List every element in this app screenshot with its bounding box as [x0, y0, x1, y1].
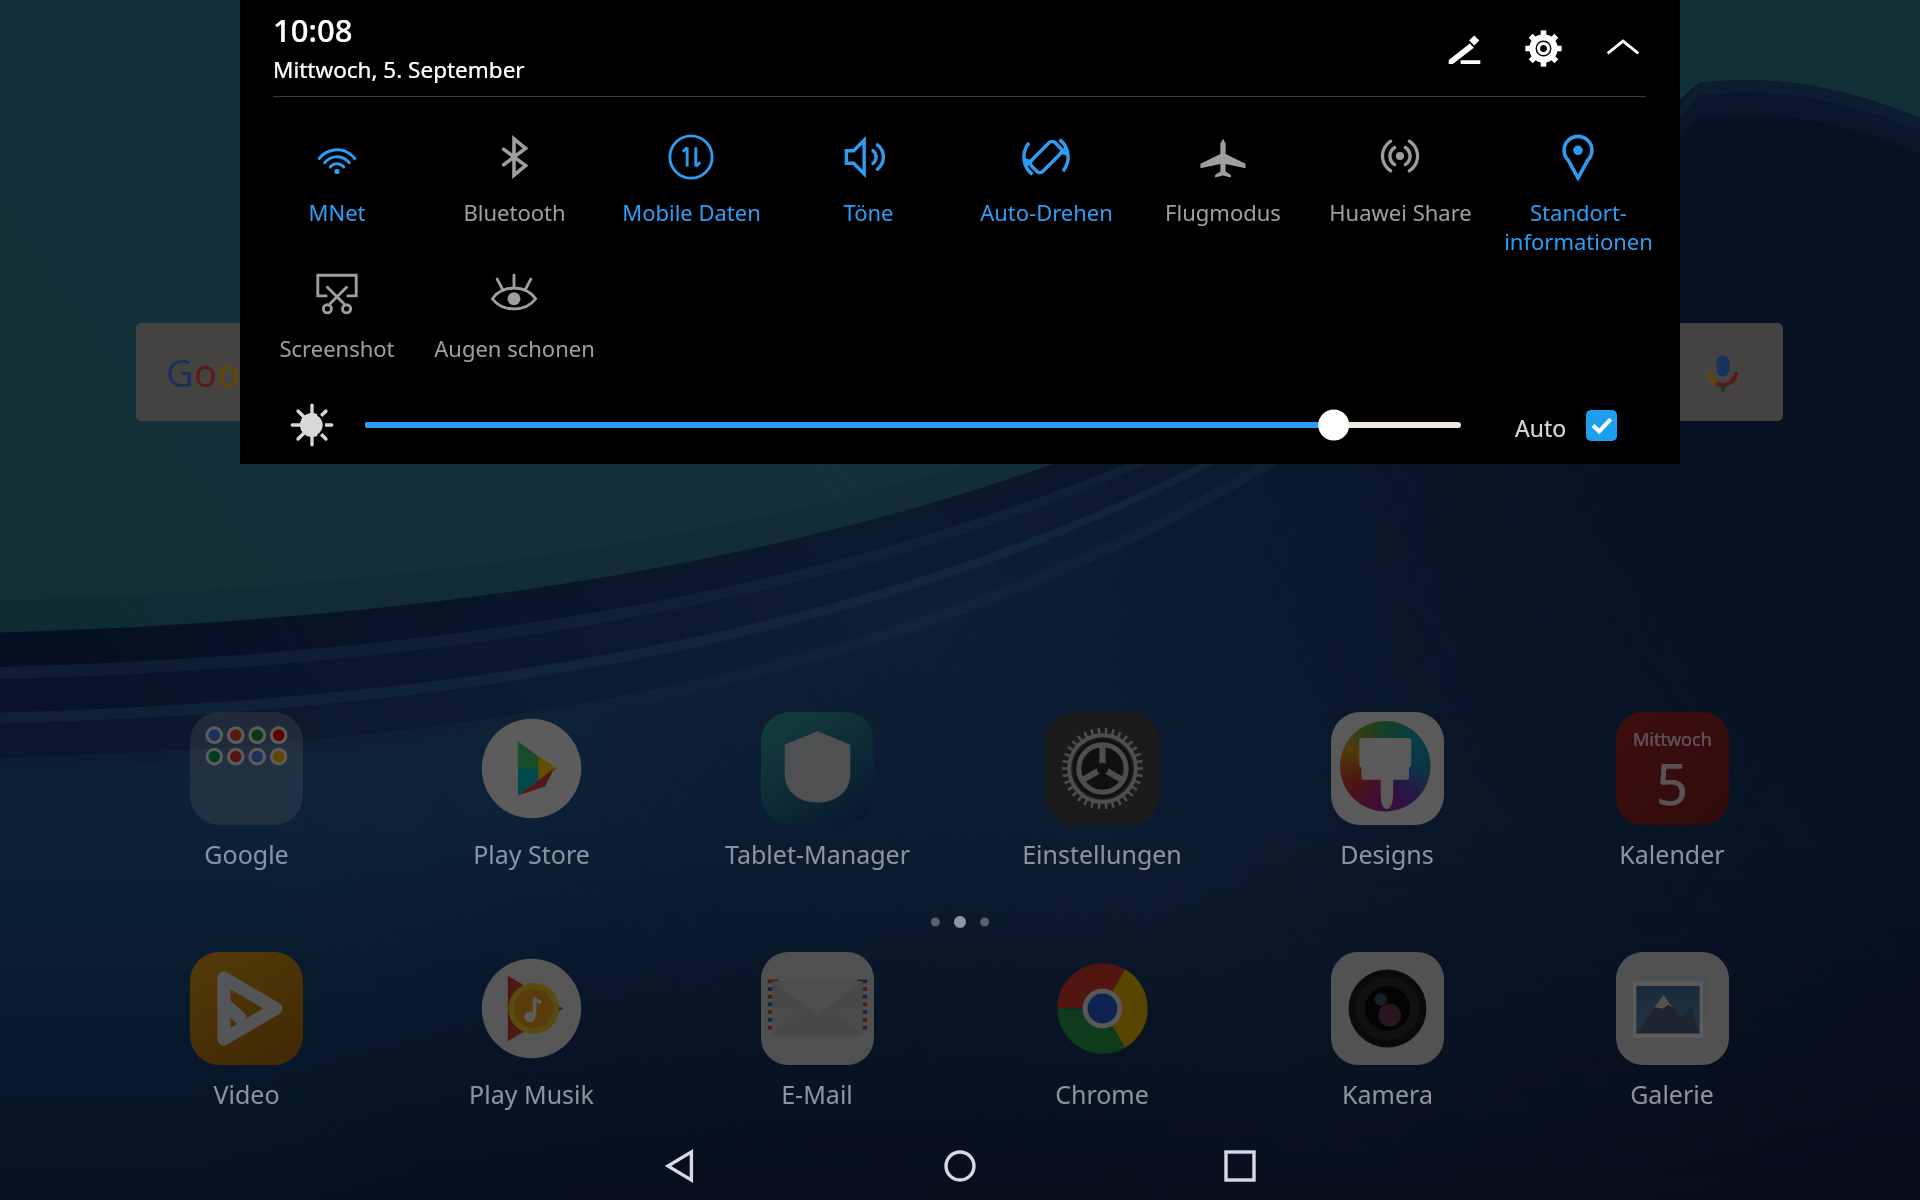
button[interactable]: [358, 405, 1468, 445]
staticText: E-Mail: [781, 1077, 853, 1111]
button[interactable]: Collapse: [1593, 18, 1653, 78]
staticText: Kamera: [1342, 1077, 1433, 1111]
staticText: Screenshot: [279, 333, 395, 363]
button[interactable]: [1247, 712, 1527, 870]
button[interactable]: [1247, 952, 1527, 1110]
button[interactable]: Flugmodus: [1133, 97, 1313, 227]
staticText: Auto-Drehen: [980, 197, 1113, 227]
button[interactable]: Standort- informationen: [1488, 97, 1668, 256]
button[interactable]: Auto brightness: [1578, 402, 1624, 448]
staticText: Mittwoch: [1633, 727, 1712, 752]
staticText: Chrome: [1055, 1077, 1149, 1111]
staticText: Designs: [1340, 837, 1434, 871]
button[interactable]: Screenshot: [247, 233, 427, 363]
staticText: Standort- informationen: [1504, 197, 1653, 256]
staticText: Auto: [1515, 412, 1567, 443]
button[interactable]: Huawei Share: [1310, 97, 1490, 227]
button[interactable]: Edit: [1434, 18, 1494, 78]
staticText: Flugmodus: [1165, 197, 1281, 227]
button[interactable]: [677, 952, 957, 1110]
staticText: Mittwoch, 5. September: [273, 54, 525, 85]
button[interactable]: [962, 952, 1242, 1110]
button[interactable]: [391, 952, 671, 1110]
button[interactable]: G: [136, 323, 1783, 421]
staticText: Video: [213, 1077, 280, 1111]
staticText: Play Musik: [469, 1077, 594, 1111]
staticText: e: [274, 346, 296, 398]
staticText: 10:08: [273, 9, 353, 51]
staticText: o: [194, 346, 217, 398]
button[interactable]: Recents: [1204, 1130, 1276, 1200]
button[interactable]: Mobile Daten: [601, 97, 781, 227]
staticText: Galerie: [1630, 1077, 1714, 1111]
staticText: MNet: [308, 197, 366, 227]
button[interactable]: Bluetooth: [424, 97, 604, 227]
staticText: Töne: [843, 197, 894, 227]
button[interactable]: Settings: [1513, 18, 1573, 78]
button[interactable]: Töne: [778, 97, 958, 227]
button[interactable]: [962, 712, 1242, 870]
button[interactable]: Mittwoch: [1532, 712, 1812, 870]
staticText: Google: [204, 837, 289, 871]
button[interactable]: MNet: [247, 97, 427, 227]
button[interactable]: [106, 952, 386, 1110]
staticText: Mobile Daten: [622, 197, 761, 227]
staticText: Tablet-Manager: [725, 837, 910, 871]
staticText: o: [217, 346, 240, 398]
button[interactable]: [391, 712, 671, 870]
button[interactable]: Auto-Drehen: [956, 97, 1136, 227]
button[interactable]: [1532, 952, 1812, 1110]
staticText: 5: [1656, 745, 1689, 821]
button[interactable]: [106, 712, 386, 870]
staticText: Einstellungen: [1022, 837, 1182, 871]
staticText: Bluetooth: [463, 197, 566, 227]
staticText: Huawei Share: [1329, 197, 1472, 227]
staticText: G: [166, 346, 194, 398]
staticText: Kalender: [1619, 837, 1725, 871]
button[interactable]: Augen schonen: [424, 233, 604, 363]
button[interactable]: Back: [644, 1130, 716, 1200]
button[interactable]: Home: [924, 1130, 996, 1200]
button[interactable]: [677, 712, 957, 870]
staticText: Augen schonen: [434, 333, 595, 363]
staticText: Play Store: [473, 837, 590, 871]
